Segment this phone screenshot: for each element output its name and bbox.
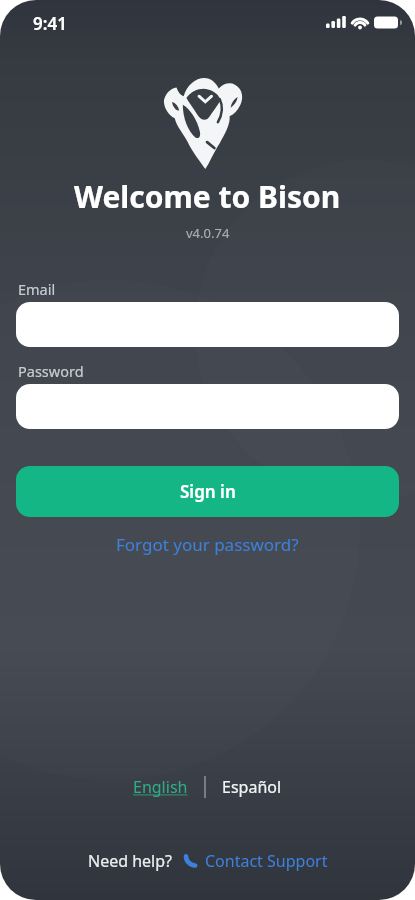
staticText: 9:41 — [33, 12, 67, 35]
staticText: Need help? — [88, 850, 173, 872]
staticText: Español — [222, 776, 282, 798]
button[interactable]: Sign in — [16, 466, 399, 517]
staticText: v4.0.74 — [186, 224, 230, 242]
button[interactable] — [16, 302, 399, 347]
staticText: Email — [18, 279, 56, 299]
button[interactable]: English — [133, 776, 188, 798]
staticText: Welcome to Bison — [74, 176, 341, 217]
button[interactable]: Contact Support — [183, 850, 328, 872]
button[interactable]: Forgot your password? — [116, 533, 299, 556]
staticText: Forgot your password? — [116, 533, 299, 556]
staticText: Sign in — [180, 480, 236, 503]
staticText: Password — [18, 361, 84, 381]
staticText: English — [133, 776, 188, 798]
button[interactable]: Español — [222, 776, 282, 798]
staticText: Contact Support — [205, 850, 328, 872]
button[interactable] — [16, 384, 399, 429]
